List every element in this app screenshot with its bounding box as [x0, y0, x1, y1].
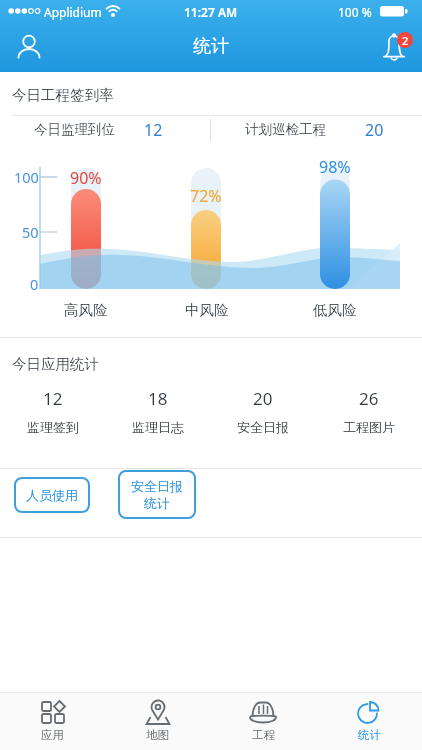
staticText: 12: [144, 119, 163, 141]
button[interactable]: 地图: [105, 693, 210, 750]
staticText: 低风险: [313, 301, 357, 319]
staticText: 监理签到: [27, 419, 79, 435]
staticText: 监理日志: [132, 419, 184, 435]
staticText: 2: [402, 33, 409, 48]
staticText: 安全日报: [237, 419, 289, 435]
staticText: 72%: [190, 185, 222, 207]
button[interactable]: [14, 32, 44, 62]
staticText: 12: [43, 387, 63, 410]
staticText: 统计: [358, 728, 381, 742]
staticText: 50: [22, 222, 39, 242]
staticText: 20: [365, 119, 384, 141]
staticText: 90%: [70, 167, 102, 189]
staticText: 100 %: [338, 4, 372, 20]
staticText: 今日应用统计: [12, 355, 99, 373]
staticText: 100: [14, 167, 39, 187]
staticText: 98%: [319, 156, 351, 178]
staticText: 今日监理到位: [34, 121, 115, 138]
staticText: 高风险: [64, 301, 108, 319]
staticText: 应用: [41, 728, 64, 742]
staticText: 工程图片: [343, 419, 395, 435]
button[interactable]: 安全日报 统计: [118, 470, 196, 519]
staticText: 工程: [252, 728, 275, 742]
button[interactable]: [381, 33, 413, 63]
staticText: 计划巡检工程: [245, 121, 326, 138]
staticText: 中风险: [185, 301, 229, 319]
button[interactable]: 工程: [210, 693, 316, 750]
staticText: 26: [359, 387, 379, 410]
staticText: 20: [253, 387, 273, 410]
button[interactable]: 统计: [316, 693, 422, 750]
button[interactable]: 人员使用: [14, 477, 90, 513]
staticText: 今日工程签到率: [12, 86, 114, 104]
staticText: Applidium: [44, 4, 102, 20]
staticText: 地图: [146, 728, 169, 742]
staticText: 统计: [193, 35, 229, 58]
staticText: 11:27 AM: [184, 4, 238, 20]
staticText: 人员使用: [26, 487, 78, 503]
staticText: 18: [148, 387, 168, 410]
button[interactable]: 应用: [0, 693, 105, 750]
staticText: 0: [30, 274, 39, 294]
staticText: 安全日报 统计: [131, 478, 183, 512]
